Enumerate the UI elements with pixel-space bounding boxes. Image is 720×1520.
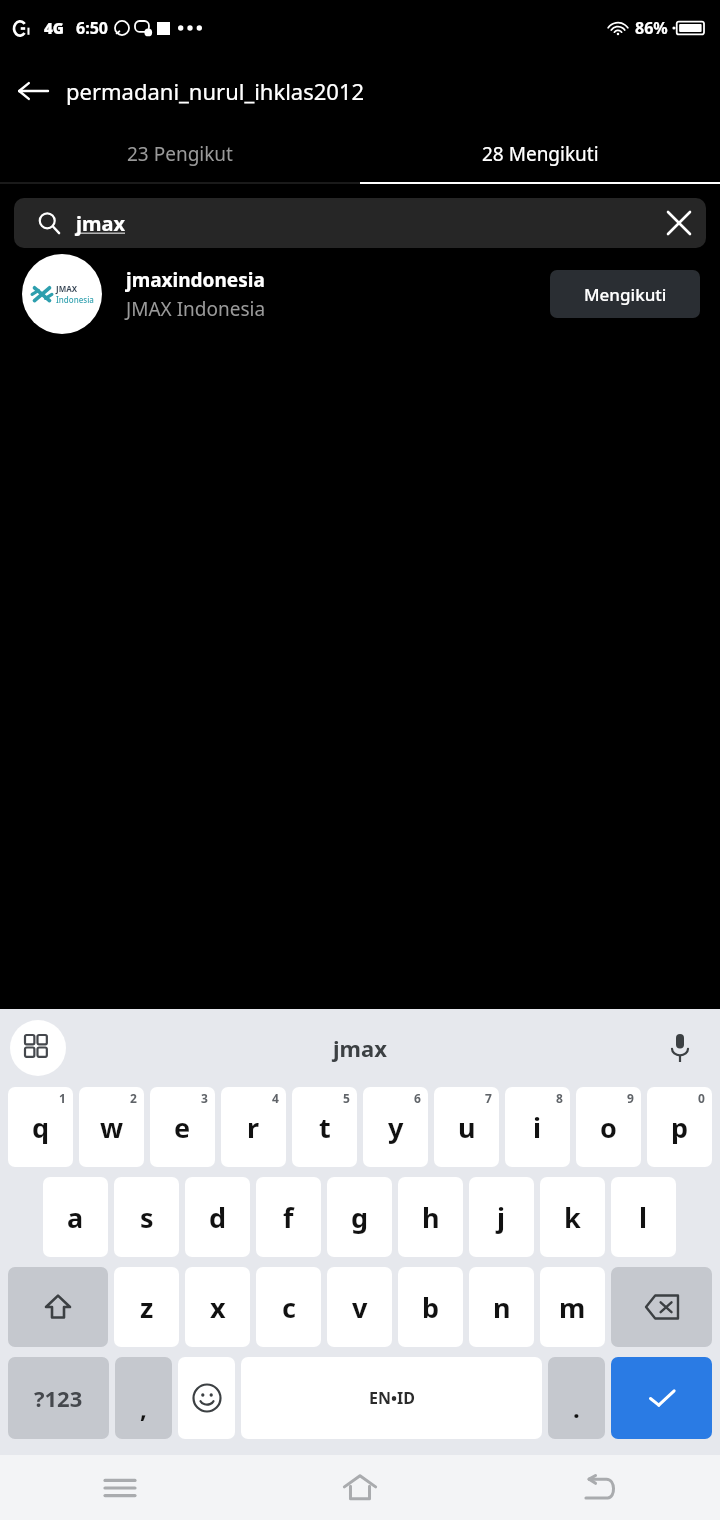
staticText: 3 bbox=[201, 1090, 208, 1106]
staticText: s bbox=[140, 1199, 154, 1236]
staticText: 9 bbox=[627, 1090, 634, 1106]
staticText: . bbox=[573, 1392, 580, 1425]
staticText: e bbox=[174, 1109, 191, 1146]
staticText: 4G bbox=[44, 18, 64, 38]
staticText: w bbox=[100, 1109, 124, 1146]
staticText: c bbox=[282, 1289, 296, 1326]
staticText: ?123 bbox=[34, 1383, 83, 1413]
staticText: h bbox=[422, 1199, 440, 1236]
button[interactable]: z bbox=[114, 1267, 179, 1347]
staticText: 0 bbox=[698, 1090, 705, 1106]
staticText: 7 bbox=[485, 1090, 492, 1106]
button[interactable]: x bbox=[185, 1267, 250, 1347]
button[interactable]: . bbox=[548, 1357, 605, 1439]
button[interactable]: u bbox=[434, 1087, 499, 1167]
button[interactable]: Back bbox=[0, 58, 66, 124]
staticText: d bbox=[209, 1199, 227, 1236]
button[interactable]: JMAX bbox=[0, 248, 720, 340]
staticText: o bbox=[600, 1109, 617, 1146]
button[interactable]: 23 Pengikut bbox=[0, 126, 360, 182]
button[interactable]: v bbox=[327, 1267, 392, 1347]
button[interactable]: p bbox=[647, 1087, 712, 1167]
button[interactable]: Space bbox=[241, 1357, 542, 1439]
button[interactable]: f bbox=[256, 1177, 321, 1257]
staticText: 4 bbox=[272, 1090, 279, 1106]
staticText: j bbox=[497, 1199, 506, 1236]
staticText: JMAX bbox=[56, 283, 78, 294]
staticText: 8 bbox=[556, 1090, 563, 1106]
staticText: 6:50 bbox=[76, 17, 108, 39]
staticText: 1 bbox=[59, 1090, 66, 1106]
button[interactable]: e bbox=[150, 1087, 215, 1167]
button[interactable]: j bbox=[469, 1177, 534, 1257]
button[interactable]: Shift bbox=[8, 1267, 108, 1347]
staticText: permadani_nurul_ihklas2012 bbox=[66, 76, 365, 106]
staticText: m bbox=[559, 1289, 586, 1326]
staticText: 2 bbox=[130, 1090, 137, 1106]
button[interactable]: Home bbox=[240, 1455, 480, 1520]
staticText: n bbox=[493, 1289, 511, 1326]
staticText: 86% bbox=[635, 17, 668, 39]
staticText: y bbox=[388, 1109, 404, 1146]
button[interactable]: d bbox=[185, 1177, 250, 1257]
button[interactable]: q bbox=[8, 1087, 73, 1167]
button[interactable]: h bbox=[398, 1177, 463, 1257]
button[interactable]: t bbox=[292, 1087, 357, 1167]
button[interactable]: r bbox=[221, 1087, 286, 1167]
button[interactable]: s bbox=[114, 1177, 179, 1257]
staticText: k bbox=[564, 1199, 581, 1236]
button[interactable]: n bbox=[469, 1267, 534, 1347]
staticText: EN•ID bbox=[369, 1387, 415, 1409]
staticText: 23 Pengikut bbox=[127, 141, 233, 167]
staticText: jmax bbox=[76, 210, 125, 237]
staticText: 5 bbox=[343, 1090, 350, 1106]
button[interactable]: Backspace bbox=[611, 1267, 712, 1347]
staticText: JMAX Indonesia bbox=[126, 296, 266, 322]
button[interactable]: l bbox=[611, 1177, 676, 1257]
button[interactable]: o bbox=[576, 1087, 641, 1167]
button[interactable]: Enter bbox=[611, 1357, 712, 1439]
staticText: , bbox=[140, 1392, 147, 1425]
staticText: x bbox=[210, 1289, 226, 1326]
staticText: i bbox=[533, 1109, 542, 1146]
staticText: v bbox=[352, 1289, 368, 1326]
button[interactable]: Clear search bbox=[652, 198, 706, 248]
button[interactable]: Recents bbox=[0, 1455, 240, 1520]
button[interactable]: c bbox=[256, 1267, 321, 1347]
button[interactable]: Voice input bbox=[658, 1026, 702, 1070]
staticText: f bbox=[283, 1199, 294, 1236]
staticText: u bbox=[458, 1109, 476, 1146]
staticText: l bbox=[639, 1199, 648, 1236]
button[interactable]: m bbox=[540, 1267, 605, 1347]
button[interactable]: Back bbox=[480, 1455, 720, 1520]
button[interactable]: 28 Mengikuti bbox=[360, 126, 720, 182]
button[interactable]: Mengikuti bbox=[550, 270, 700, 318]
button[interactable]: y bbox=[363, 1087, 428, 1167]
staticText: b bbox=[422, 1289, 440, 1326]
staticText: Mengikuti bbox=[584, 283, 667, 306]
button[interactable]: jmax bbox=[14, 198, 706, 248]
button[interactable]: k bbox=[540, 1177, 605, 1257]
button[interactable]: a bbox=[43, 1177, 108, 1257]
staticText: a bbox=[67, 1199, 84, 1236]
staticText: t bbox=[319, 1109, 331, 1146]
staticText: p bbox=[671, 1109, 689, 1146]
staticText: r bbox=[247, 1109, 260, 1146]
staticText: jmax bbox=[333, 1033, 387, 1063]
staticText: jmaxindonesia bbox=[126, 267, 265, 293]
button[interactable]: i bbox=[505, 1087, 570, 1167]
button[interactable]: , bbox=[115, 1357, 172, 1439]
staticText: g bbox=[351, 1199, 369, 1236]
button[interactable]: w bbox=[79, 1087, 144, 1167]
button[interactable]: Keyboard menu bbox=[10, 1020, 66, 1076]
staticText: z bbox=[140, 1289, 154, 1326]
staticText: 28 Mengikuti bbox=[482, 141, 599, 167]
button[interactable]: g bbox=[327, 1177, 392, 1257]
staticText: Indonesia bbox=[56, 294, 94, 305]
button[interactable]: ?123 bbox=[8, 1357, 109, 1439]
staticText: 6 bbox=[414, 1090, 421, 1106]
button[interactable]: Emoji bbox=[178, 1357, 235, 1439]
staticText: q bbox=[32, 1109, 50, 1146]
button[interactable]: b bbox=[398, 1267, 463, 1347]
